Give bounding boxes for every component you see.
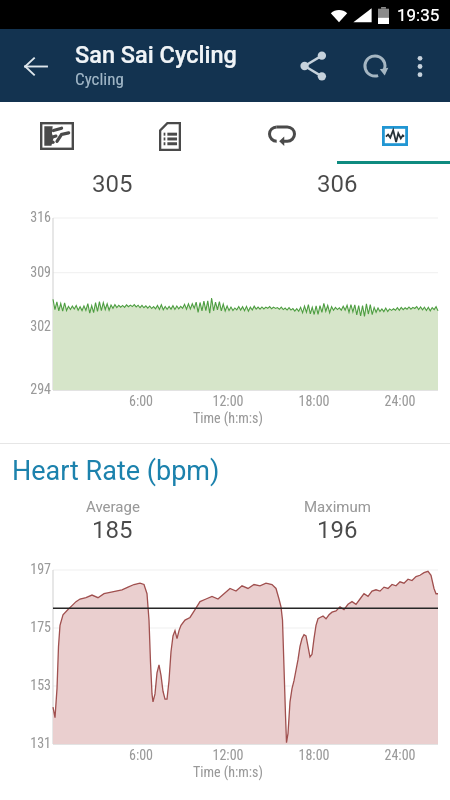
staticText: San Sai Cycling [75, 41, 237, 69]
staticText: 316 [18, 209, 51, 225]
staticText: Heart Rate (bpm) [12, 455, 220, 487]
button[interactable]: More options [400, 46, 440, 86]
staticText: 153 [18, 677, 51, 693]
staticText: 131 [18, 735, 51, 751]
button[interactable]: Details [113, 102, 226, 164]
button[interactable]: Map [0, 102, 113, 164]
button[interactable]: Laps [225, 102, 338, 164]
button[interactable]: Charts [338, 102, 450, 164]
staticText: Time (h:m:s) [178, 410, 278, 426]
staticText: 24:00 [375, 747, 425, 763]
staticText: 306 [317, 170, 358, 198]
staticText: 24:00 [375, 393, 425, 409]
staticText: Average [86, 498, 140, 516]
staticText: 19:35 [397, 5, 440, 25]
staticText: 12:00 [203, 747, 253, 763]
button[interactable]: Share [289, 42, 337, 90]
staticText: 302 [18, 318, 51, 334]
staticText: 18:00 [289, 393, 339, 409]
staticText: 12:00 [203, 393, 253, 409]
staticText: 309 [18, 264, 51, 280]
staticText: 185 [92, 516, 133, 544]
staticText: Maximum [304, 498, 371, 516]
staticText: 196 [317, 516, 358, 544]
staticText: Time (h:m:s) [178, 764, 278, 780]
staticText: Cycling [75, 69, 124, 89]
staticText: 175 [18, 619, 51, 635]
staticText: 197 [18, 561, 51, 577]
button[interactable]: Back [11, 42, 59, 90]
staticText: 294 [18, 381, 51, 397]
staticText: 6:00 [116, 747, 166, 763]
staticText: 305 [92, 170, 133, 198]
button[interactable]: Refresh [351, 42, 399, 90]
staticText: 6:00 [116, 393, 166, 409]
staticText: 18:00 [289, 747, 339, 763]
